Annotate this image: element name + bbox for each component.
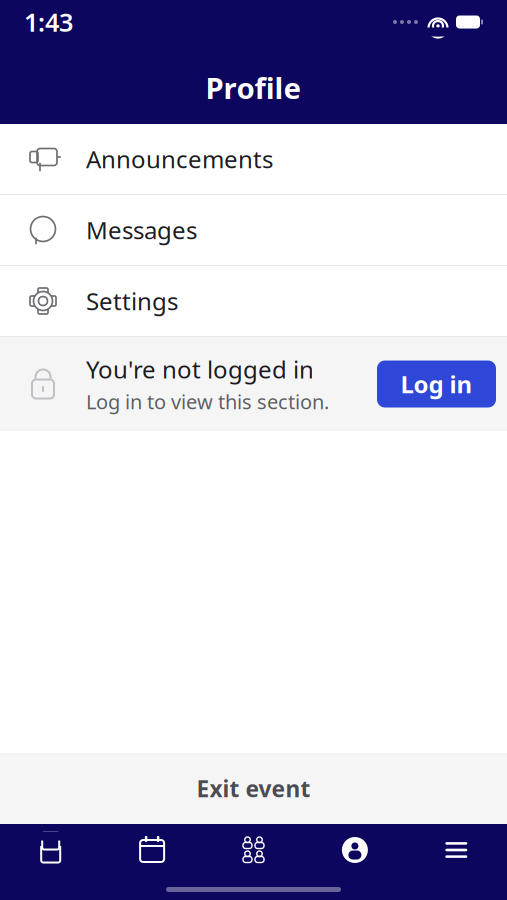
staticText: 1:43 (24, 5, 73, 39)
staticText: Exit event (196, 773, 310, 803)
staticText: Log in (400, 368, 472, 400)
staticText: Profile (205, 68, 301, 107)
button[interactable]: Attendees (203, 824, 304, 876)
button[interactable]: Messages (0, 195, 507, 266)
button[interactable]: Home (0, 824, 101, 876)
button[interactable]: Profile (304, 824, 406, 876)
button[interactable]: Schedule (101, 824, 203, 876)
button[interactable]: Settings (0, 266, 507, 337)
button[interactable]: Announcements (0, 124, 507, 195)
staticText: Settings (86, 285, 178, 317)
button[interactable]: Log in (377, 360, 496, 407)
button[interactable]: More (406, 824, 507, 876)
staticText: You're not logged in (86, 353, 314, 385)
staticText: Announcements (86, 143, 273, 175)
staticText: Log in to view this section. (86, 388, 329, 415)
staticText: Messages (86, 214, 197, 246)
button[interactable]: Exit event (0, 753, 507, 824)
